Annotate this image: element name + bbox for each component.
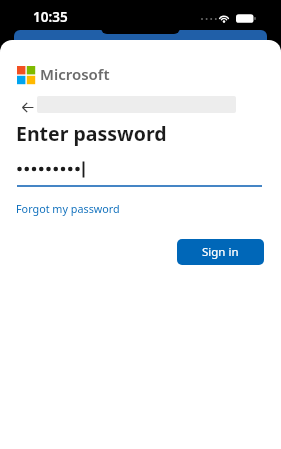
button[interactable]: Forgot my password: [16, 201, 120, 216]
button[interactable]: Sign in: [177, 239, 264, 265]
button[interactable]: [22, 102, 34, 113]
staticText: Sign in: [202, 244, 239, 260]
staticText: Microsoft: [40, 64, 110, 84]
button[interactable]: [17, 161, 87, 179]
staticText: 10:35: [33, 8, 68, 26]
staticText: Enter password: [16, 120, 167, 147]
